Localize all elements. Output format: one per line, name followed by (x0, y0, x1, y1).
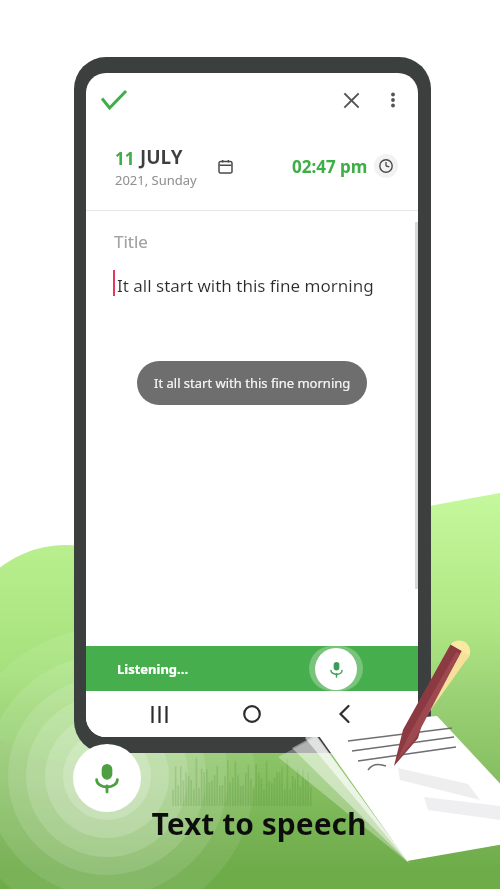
button[interactable]: Recents (139, 694, 179, 734)
button[interactable]: It all start with this fine morning (137, 361, 367, 405)
button[interactable]: Back (325, 694, 365, 734)
staticText: It all start with this fine morning (117, 274, 374, 297)
staticText: Listening... (117, 660, 189, 678)
staticText: 11 (115, 147, 135, 170)
staticText: 2021, Sunday (115, 171, 197, 189)
staticText: 02:47 pm (292, 155, 368, 178)
button[interactable]: Close (339, 88, 363, 112)
staticText: It all start with this fine morning (154, 374, 351, 392)
button[interactable]: Stop listening (309, 646, 363, 691)
staticText: Text to speech (151, 803, 367, 844)
button[interactable]: Save (101, 87, 127, 113)
button[interactable]: Home (232, 694, 272, 734)
button[interactable]: Pick date (212, 153, 238, 179)
button[interactable]: Pick time (374, 154, 398, 178)
staticText: JULY (135, 144, 183, 170)
button[interactable]: More options (382, 89, 404, 111)
button[interactable]: Microphone (73, 744, 141, 812)
staticText: Title (114, 230, 148, 253)
